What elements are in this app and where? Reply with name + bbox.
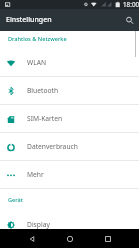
staticText: Gerät: [8, 196, 23, 204]
staticText: Bluetooth: [27, 86, 59, 95]
staticText: Display: [27, 220, 50, 229]
staticText: Mehr: [27, 170, 44, 179]
staticText: Einstellungen: [6, 15, 52, 25]
button[interactable]: SIM-Karten: [0, 105, 139, 132]
staticText: Drahtlos & Netzwerke: [8, 35, 67, 43]
button[interactable]: WLAN: [0, 49, 139, 76]
button[interactable]: Zurück: [22, 229, 41, 248]
staticText: WLAN: [27, 58, 47, 67]
staticText: Datenverbrauch: [27, 142, 78, 151]
button[interactable]: Display: [0, 211, 139, 238]
button[interactable]: Übersicht: [98, 229, 117, 248]
staticText: SIM-Karten: [27, 114, 63, 123]
button[interactable]: Suchen: [117, 9, 139, 31]
button[interactable]: Startbildschirm: [60, 229, 79, 248]
staticText: 18:00: [123, 0, 139, 9]
button[interactable]: Mehr: [0, 161, 139, 188]
button[interactable]: Datenverbrauch: [0, 133, 139, 160]
button[interactable]: Bluetooth: [0, 77, 139, 104]
